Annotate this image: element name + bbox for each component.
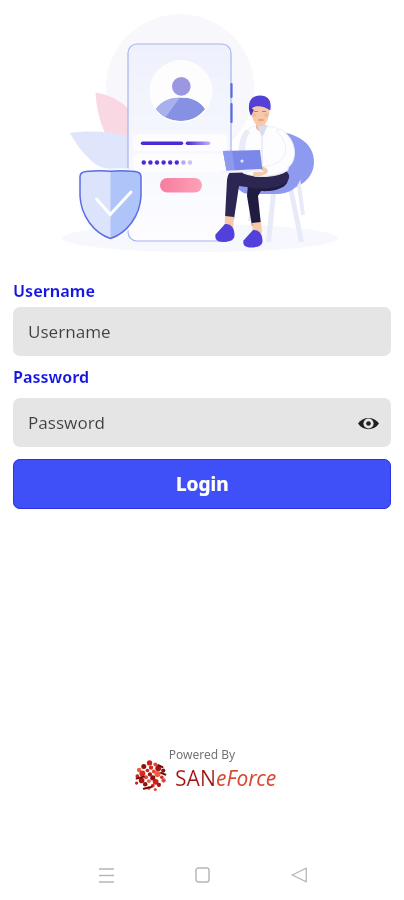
staticText: Password <box>28 411 105 434</box>
button[interactable]: Username <box>13 307 391 356</box>
staticText: SAN <box>175 764 216 793</box>
staticText: Login <box>176 471 229 497</box>
button[interactable]: Login <box>13 459 391 509</box>
button[interactable]: Back <box>279 855 319 895</box>
staticText: Password <box>13 366 90 388</box>
button[interactable]: Home <box>182 855 222 895</box>
button[interactable]: Recent apps <box>86 855 126 895</box>
staticText: Username <box>13 280 95 302</box>
staticText: Username <box>28 320 111 343</box>
button[interactable]: Show password <box>353 408 383 438</box>
staticText: Powered By <box>0 746 404 762</box>
button[interactable]: Password <box>13 398 391 447</box>
staticText: eForce <box>216 764 277 793</box>
